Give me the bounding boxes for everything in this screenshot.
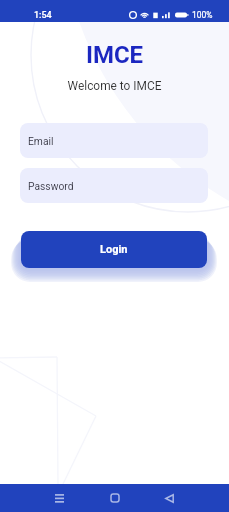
button[interactable]: Password [20, 168, 208, 203]
staticText: Welcome to IMCE [0, 79, 229, 93]
staticText: IMCE [0, 41, 229, 69]
staticText: Email [28, 135, 54, 147]
staticText: Password [28, 180, 74, 192]
staticText: 1:54 [34, 10, 52, 21]
button[interactable]: Login [21, 231, 207, 268]
staticText: Login [100, 243, 128, 256]
button[interactable]: Home [100, 484, 129, 512]
button[interactable]: Recent apps [45, 484, 73, 512]
button[interactable]: Back [155, 484, 183, 512]
staticText: 100% [192, 10, 213, 20]
button[interactable]: Email [20, 123, 208, 158]
